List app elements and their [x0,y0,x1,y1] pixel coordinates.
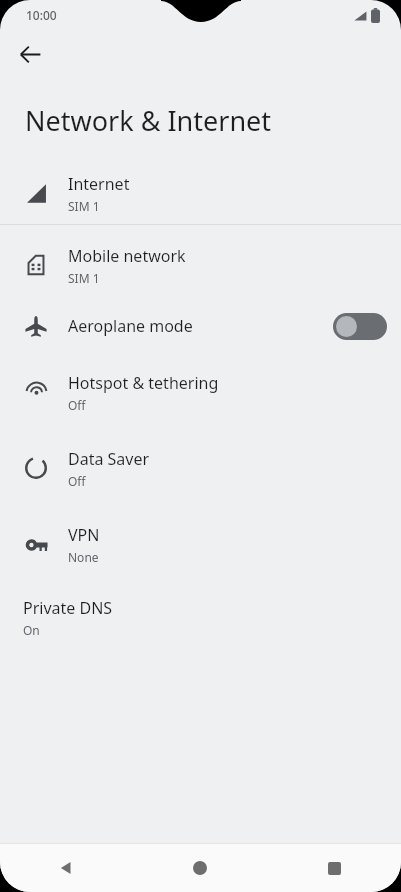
button[interactable]: Back [10,34,50,74]
staticText: Hotspot & tethering [68,372,219,394]
staticText: Off [68,397,86,413]
button[interactable]: Back [0,844,133,892]
button[interactable]: Internet [0,162,401,224]
staticText: Aeroplane mode [68,315,193,337]
button[interactable]: Mobile network [0,232,401,298]
button[interactable]: Hotspot & tethering [0,354,401,430]
button[interactable]: Aeroplane mode toggle [333,313,387,340]
button[interactable]: Data Saver [0,430,401,506]
button[interactable]: Home [133,844,267,892]
staticText: On [23,622,40,638]
button[interactable]: Recent apps [267,844,401,892]
staticText: Data Saver [68,448,150,470]
staticText: Private DNS [23,597,113,619]
staticText: Network & Internet [25,102,272,139]
staticText: VPN [68,524,100,546]
staticText: SIM 1 [68,270,100,286]
staticText: SIM 1 [68,198,100,214]
staticText: Internet [68,173,130,195]
staticText: 10:00 [26,7,57,23]
staticText: Off [68,473,86,489]
staticText: None [68,549,99,565]
button[interactable]: VPN [0,506,401,582]
button[interactable]: Aeroplane mode [0,298,401,354]
button[interactable]: Private DNS [0,582,401,652]
staticText: Mobile network [68,245,186,267]
